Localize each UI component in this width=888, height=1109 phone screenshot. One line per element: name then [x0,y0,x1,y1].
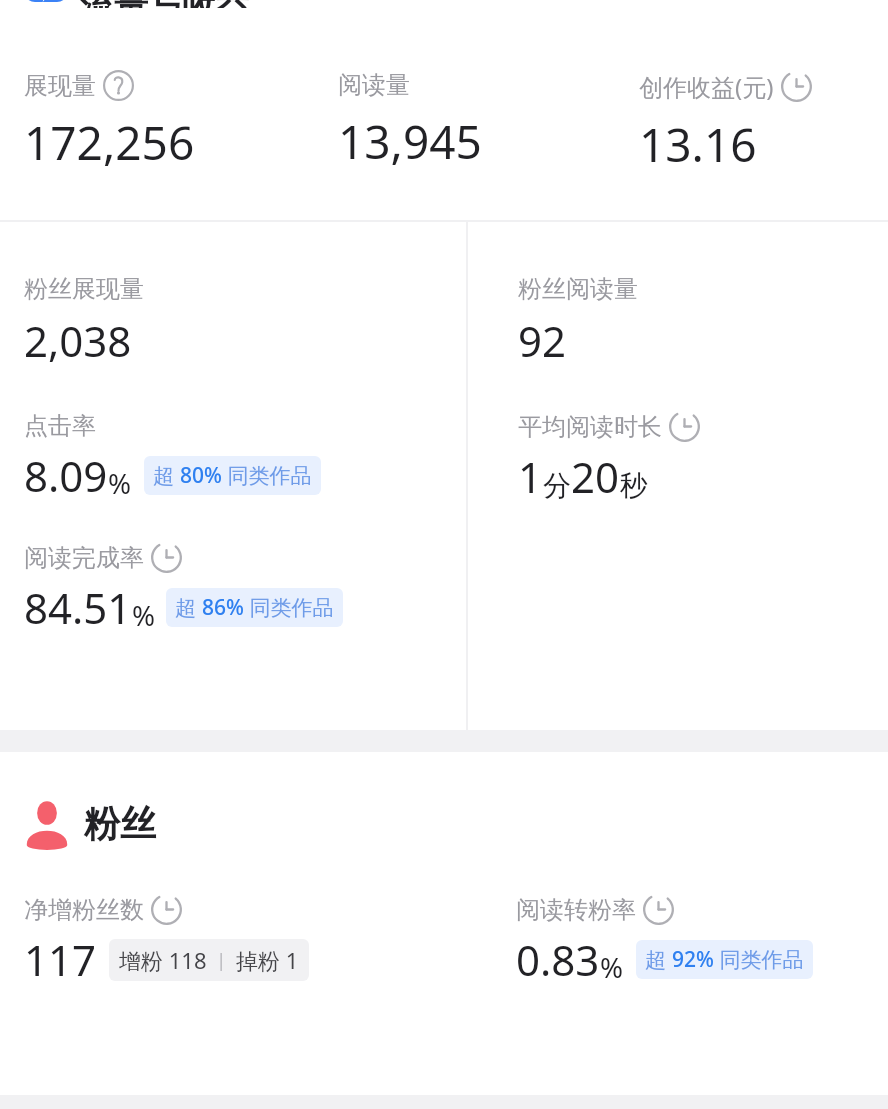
other: Help [103,70,134,101]
staticText: 13,945 [338,110,482,173]
staticText: 创作收益(元) [639,70,774,103]
button[interactable]: 超 [144,456,321,495]
other: Info [151,894,182,925]
staticText: 86% [202,593,244,622]
staticText: 13.16 [639,113,757,176]
button[interactable]: 粉丝展现量 [24,274,144,369]
staticText: 超 [645,945,672,974]
other: Info [781,71,812,102]
staticText: 展现量 [24,71,96,101]
staticText: 172,256 [24,111,195,174]
staticText: 80% [180,461,222,490]
staticText: 同类作品 [222,461,312,490]
staticText: 0.83 [516,931,600,988]
staticText: 阅读完成率 [24,543,144,573]
button[interactable]: 阅读量 [338,70,639,173]
staticText: 117 [24,931,97,988]
button[interactable]: 展现量 [24,70,338,174]
button[interactable]: 超 [166,588,343,627]
other: Info [669,411,700,442]
button[interactable]: 点击率 [24,411,321,504]
staticText: 平均阅读时长 [518,412,662,442]
staticText: % [600,948,624,986]
button[interactable]: 平均阅读时长 [518,411,700,505]
button[interactable]: 阅读完成率 [24,542,343,636]
staticText: 增粉 118 [119,945,207,975]
button[interactable]: 流量与收益 [0,0,888,22]
button[interactable]: 阅读转粉率 [516,894,888,988]
staticText: 掉粉 1 [236,945,299,975]
staticText: | [207,948,236,973]
staticText: 粉丝阅读量 [518,274,638,304]
staticText: 84.51 [24,579,132,636]
staticText: 2,038 [24,312,132,369]
staticText: 秒 [620,468,648,503]
staticText: 阅读量 [338,70,410,100]
button[interactable]: 超 [636,940,813,979]
staticText: 92% [672,945,714,974]
staticText: 分 [543,468,571,503]
button[interactable]: 创作收益(元) [639,70,888,176]
button[interactable]: 粉丝 [0,798,888,848]
staticText: 8.09 [24,447,108,504]
staticText: 超 [153,461,180,490]
staticText: 同类作品 [714,945,804,974]
staticText: 1 [518,448,543,505]
staticText: 20 [571,448,620,505]
staticText: 阅读转粉率 [516,895,636,925]
staticText: 点击率 [24,411,96,441]
other: Info [151,542,182,573]
button[interactable]: 粉丝阅读量 [518,274,638,369]
staticText: 超 [175,593,202,622]
staticText: 同类作品 [244,593,334,622]
staticText: 粉丝展现量 [24,274,144,304]
button[interactable]: 净增粉丝数 [24,894,516,988]
staticText: 净增粉丝数 [24,895,144,925]
staticText: 流量与收益 [80,0,250,8]
other: Info [643,894,674,925]
staticText: 92 [518,312,567,369]
staticText: 粉丝 [84,801,156,846]
staticText: % [108,464,132,502]
staticText: % [132,596,156,634]
